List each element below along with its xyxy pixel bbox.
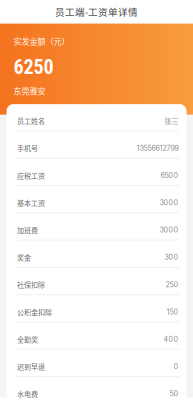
button[interactable]: 加班费 [6, 213, 186, 241]
staticText: 250 [165, 280, 178, 289]
staticText: 全勤奖 [17, 334, 38, 344]
staticText: 迟到早退 [17, 361, 45, 371]
staticText: 员工姓名 [17, 116, 45, 126]
staticText: 50 [169, 389, 178, 398]
staticText: 150 [166, 307, 178, 316]
staticText: 东莞雅安 [13, 85, 45, 97]
staticText: 6500 [160, 171, 178, 180]
staticText: 员工端-工资单详情 [55, 5, 138, 18]
staticText: 公积金扣除 [17, 307, 52, 317]
button[interactable]: 水电费 [6, 377, 186, 401]
staticText: 3000 [159, 198, 178, 207]
staticText: 张三 [164, 116, 178, 126]
staticText: 0 [173, 362, 178, 371]
staticText: 应税工资 [17, 170, 45, 180]
button[interactable]: 应税工资 [6, 159, 186, 186]
button[interactable]: 奖金 [6, 241, 186, 268]
button[interactable]: 员工姓名 [6, 104, 186, 131]
staticText: 300 [164, 253, 178, 262]
staticText: 6250 [13, 55, 53, 79]
staticText: 基本工资 [17, 197, 45, 208]
staticText: 加班费 [17, 225, 38, 235]
staticText: 手机号 [17, 143, 38, 153]
button[interactable]: 社保扣除 [6, 268, 186, 295]
staticText: 13556612799 [136, 144, 178, 152]
button[interactable]: 手机号 [6, 131, 186, 159]
staticText: 奖金 [17, 252, 31, 262]
staticText: 实发金额（元） [13, 35, 69, 47]
staticText: 400 [163, 335, 178, 343]
button[interactable]: 迟到早退 [6, 350, 186, 377]
staticText: 社保扣除 [17, 279, 45, 290]
staticText: 水电费 [17, 389, 38, 399]
staticText: 3000 [159, 226, 178, 234]
button[interactable]: 基本工资 [6, 186, 186, 213]
button[interactable]: 公积金扣除 [6, 295, 186, 322]
button[interactable]: 全勤奖 [6, 322, 186, 350]
